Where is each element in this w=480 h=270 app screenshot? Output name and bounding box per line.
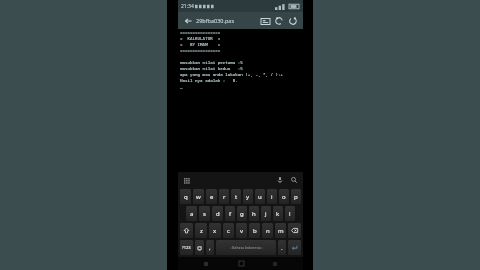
staticText: p [294, 193, 298, 201]
staticText: g [240, 210, 244, 218]
button[interactable]: n [262, 223, 273, 238]
button[interactable]: o [279, 189, 289, 204]
button[interactable]: e [206, 189, 217, 204]
staticText: v [240, 227, 244, 235]
button[interactable]: b [249, 223, 260, 238]
staticText: l [289, 210, 291, 218]
staticText: y [246, 193, 250, 201]
button[interactable]: z [195, 223, 207, 238]
button[interactable]: . [278, 240, 286, 255]
button[interactable]: Undo [273, 15, 285, 27]
button[interactable]: ‹ Bahasa Indonesia › [216, 240, 276, 255]
staticText: e [210, 193, 214, 201]
button[interactable]: a [186, 206, 197, 221]
staticText: d [216, 210, 220, 218]
staticText: 29bfba030.pas [196, 17, 235, 24]
button[interactable]: t [231, 189, 241, 204]
button[interactable]: Enter [288, 240, 301, 255]
staticText: c [227, 227, 230, 235]
staticText: r [223, 193, 226, 201]
staticText: ?123 [182, 245, 191, 250]
button[interactable]: v [236, 223, 247, 238]
staticText: o [282, 193, 286, 201]
staticText: masukkan nilai pertama :5 [180, 60, 243, 66]
staticText: h [252, 210, 256, 218]
staticText: 21:34 [181, 3, 194, 10]
staticText: , [209, 244, 211, 252]
button[interactable]: x [209, 223, 221, 238]
button[interactable]: Toolbar menu [182, 176, 191, 185]
staticText: ================ [180, 30, 221, 36]
staticText: u [258, 193, 262, 201]
button[interactable]: f [225, 206, 235, 221]
button[interactable]: q [180, 189, 191, 204]
staticText: . [281, 244, 283, 252]
staticText: m [278, 227, 284, 235]
button[interactable]: r [219, 189, 229, 204]
button[interactable]: m [275, 223, 286, 238]
staticText: a [190, 210, 194, 218]
button[interactable]: Backspace [288, 223, 301, 238]
staticText: ================ [180, 48, 221, 54]
staticText: b [253, 227, 257, 235]
button[interactable]: ?123 [180, 240, 193, 255]
button[interactable]: , [206, 240, 214, 255]
button[interactable]: s [199, 206, 210, 221]
button[interactable]: ☺ [195, 240, 204, 255]
staticText: j [265, 210, 267, 218]
staticText: k [276, 210, 280, 218]
staticText: Hasil nya adalah : 8. [180, 78, 238, 84]
button[interactable]: p [291, 189, 301, 204]
staticText: q [184, 193, 188, 201]
staticText: w [196, 193, 201, 201]
button[interactable]: i [267, 189, 277, 204]
button[interactable]: u [255, 189, 265, 204]
staticText: masukkan nilai kedua :5 [180, 66, 243, 72]
staticText: s [203, 210, 206, 218]
staticText: ‹ Bahasa Indonesia › [230, 245, 263, 250]
button[interactable]: k [273, 206, 283, 221]
button[interactable]: Back [199, 257, 213, 270]
staticText: i [271, 193, 273, 201]
button[interactable]: Voice input [275, 175, 285, 185]
staticText: ☺ [197, 245, 203, 251]
button[interactable]: Shift [180, 223, 193, 238]
staticText: = BY IMAM = [180, 42, 221, 48]
button[interactable]: Recents [268, 257, 282, 270]
button[interactable]: Home [234, 257, 248, 270]
button[interactable]: Keyboard [259, 15, 271, 27]
button[interactable]: h [249, 206, 259, 221]
staticText: f [229, 210, 232, 218]
button[interactable]: y [243, 189, 253, 204]
staticText: n [266, 227, 270, 235]
button[interactable]: c [223, 223, 234, 238]
button[interactable]: Redo [287, 15, 299, 27]
staticText: t [235, 193, 238, 201]
button[interactable]: l [285, 206, 295, 221]
staticText: z [200, 227, 203, 235]
button[interactable]: g [237, 206, 247, 221]
button[interactable]: w [193, 189, 204, 204]
staticText: x [213, 227, 217, 235]
button[interactable]: Search [289, 175, 299, 185]
button[interactable]: d [212, 206, 223, 221]
staticText: _ [180, 84, 183, 90]
staticText: = KALKULATOR = [180, 36, 221, 42]
button[interactable]: j [261, 206, 271, 221]
button[interactable]: Back [182, 15, 193, 26]
staticText: apa yang mau anda lakukan (+, -, *, / ):… [180, 72, 284, 78]
